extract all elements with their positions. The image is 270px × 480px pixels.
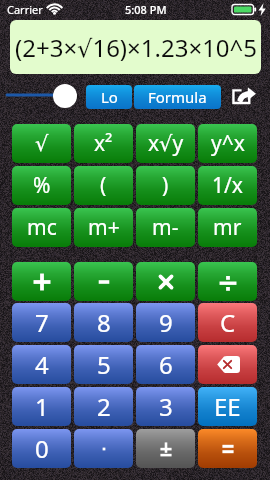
staticText: 1/x xyxy=(212,171,243,200)
staticText: mc xyxy=(27,213,57,242)
button[interactable]: EE xyxy=(198,387,257,426)
button[interactable] xyxy=(198,345,257,384)
button[interactable]: 7 xyxy=(12,303,71,342)
button[interactable]: 8 xyxy=(74,303,133,342)
button[interactable]: m- xyxy=(136,208,195,247)
button[interactable]: mc xyxy=(12,208,71,247)
staticText: Formula xyxy=(148,87,207,107)
staticText: ( xyxy=(100,171,107,200)
staticText: 8 xyxy=(97,306,111,339)
button[interactable]: ( xyxy=(74,166,133,205)
button[interactable] xyxy=(74,429,133,468)
staticText: x² xyxy=(94,129,113,158)
staticText: ) xyxy=(162,171,169,200)
staticText: 0 xyxy=(35,432,49,465)
button[interactable]: mr xyxy=(198,208,257,247)
button[interactable] xyxy=(198,262,257,301)
staticText: m+ xyxy=(88,213,120,242)
staticText: Carrier xyxy=(7,2,43,17)
button[interactable]: x√y xyxy=(136,124,195,163)
button[interactable] xyxy=(198,429,257,468)
staticText: 2 xyxy=(97,390,111,423)
staticText: 9 xyxy=(159,306,173,339)
staticText: 7 xyxy=(35,306,49,339)
staticText: Lo xyxy=(101,87,118,107)
button[interactable]: 2 xyxy=(74,387,133,426)
staticText: 5 xyxy=(97,348,111,381)
staticText: % xyxy=(33,171,51,200)
staticText: C xyxy=(220,306,236,339)
button[interactable]: 9 xyxy=(136,303,195,342)
staticText: x√y xyxy=(148,129,184,158)
staticText: √ xyxy=(35,132,49,156)
button[interactable]: 1/x xyxy=(198,166,257,205)
button[interactable]: 6 xyxy=(136,345,195,384)
button[interactable] xyxy=(136,429,195,468)
button[interactable]: 1 xyxy=(12,387,71,426)
button[interactable]: Slider handle xyxy=(53,84,77,108)
button[interactable]: Lo xyxy=(86,85,132,109)
button[interactable] xyxy=(136,262,195,301)
button[interactable]: ) xyxy=(136,166,195,205)
staticText: y^x xyxy=(211,129,245,158)
button[interactable]: C xyxy=(198,303,257,342)
staticText: (2+3×√16)×1.23×10^5 xyxy=(15,31,258,64)
button[interactable] xyxy=(12,262,71,301)
staticText: 4 xyxy=(35,348,49,381)
staticText: m- xyxy=(152,213,179,242)
button[interactable]: Share xyxy=(232,87,256,104)
staticText: EE xyxy=(214,390,241,423)
staticText: 3 xyxy=(159,390,173,423)
button[interactable]: √ xyxy=(12,124,71,163)
button[interactable]: 4 xyxy=(12,345,71,384)
staticText: mr xyxy=(213,213,242,242)
button[interactable]: Formula xyxy=(134,85,221,109)
button[interactable]: 3 xyxy=(136,387,195,426)
button[interactable]: % xyxy=(12,166,71,205)
button[interactable]: 0 xyxy=(12,429,71,468)
staticText: 5:08 PM xyxy=(125,2,167,17)
button[interactable]: y^x xyxy=(198,124,257,163)
staticText: 6 xyxy=(159,348,173,381)
staticText: 1 xyxy=(35,390,49,423)
button[interactable]: x² xyxy=(74,124,133,163)
button[interactable] xyxy=(74,262,133,301)
button[interactable]: 5 xyxy=(74,345,133,384)
button[interactable]: m+ xyxy=(74,208,133,247)
